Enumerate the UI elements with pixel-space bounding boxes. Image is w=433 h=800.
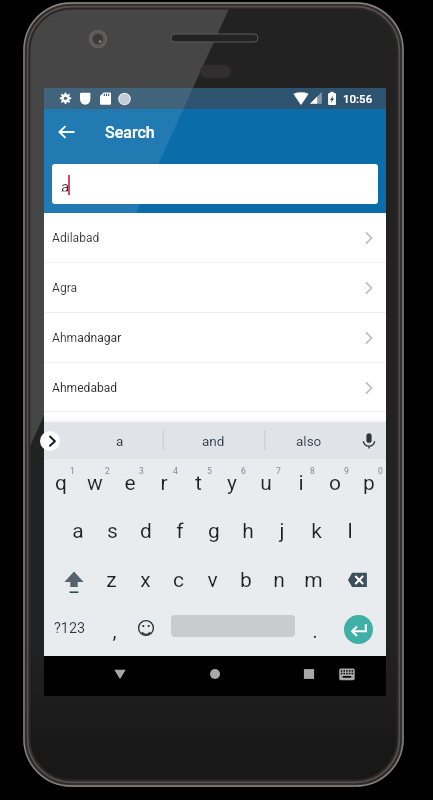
staticText: a	[61, 178, 70, 196]
button[interactable]: w	[78, 466, 112, 500]
staticText: 7	[276, 466, 281, 476]
staticText: 1	[70, 466, 75, 476]
button[interactable]: Backspace	[342, 563, 376, 597]
button[interactable]: also	[269, 422, 349, 459]
button[interactable]: a	[61, 514, 95, 548]
staticText: v	[207, 568, 218, 593]
button[interactable]: ?123	[53, 611, 87, 645]
button[interactable]: Agra	[44, 263, 386, 313]
button[interactable]: a	[80, 422, 160, 459]
button[interactable]: u	[249, 466, 283, 500]
staticText: also	[296, 433, 322, 449]
button[interactable]: t	[181, 466, 215, 500]
button[interactable]: b	[229, 563, 263, 597]
button[interactable]: r	[147, 466, 181, 500]
button[interactable]: d	[129, 514, 163, 548]
button[interactable]: j	[265, 514, 299, 548]
button[interactable]: k	[299, 514, 333, 548]
staticText: c	[173, 568, 184, 593]
staticText: 6	[241, 466, 246, 476]
staticText: 9	[344, 466, 349, 476]
button[interactable]: l	[333, 514, 367, 548]
staticText: b	[240, 568, 252, 593]
staticText: .	[312, 619, 318, 644]
button[interactable]: Ahmedabad	[44, 363, 386, 412]
staticText: g	[208, 519, 220, 544]
button[interactable]: m	[296, 563, 330, 597]
staticText: i	[298, 471, 304, 496]
staticText: k	[311, 519, 322, 544]
button[interactable]: Back	[47, 112, 87, 152]
button[interactable]: More suggestions	[40, 431, 60, 451]
staticText: a	[116, 433, 124, 449]
staticText: p	[363, 471, 375, 496]
button[interactable]: Switch keyboard	[330, 657, 364, 691]
button[interactable]: i	[284, 466, 318, 500]
button[interactable]: n	[262, 563, 296, 597]
staticText: a	[72, 519, 84, 544]
staticText: 3	[139, 466, 144, 476]
button[interactable]: y	[215, 466, 249, 500]
staticText: z	[106, 568, 117, 593]
staticText: q	[55, 471, 67, 496]
staticText: w	[87, 471, 103, 496]
button[interactable]: f	[163, 514, 197, 548]
staticText: j	[279, 519, 285, 544]
button[interactable]: .	[298, 614, 332, 648]
button[interactable]: Back	[103, 657, 137, 691]
button[interactable]: h	[231, 514, 265, 548]
staticText: 8	[310, 466, 315, 476]
staticText: r	[160, 471, 168, 496]
button[interactable]: Enter	[344, 615, 373, 644]
button[interactable]: v	[195, 563, 229, 597]
button[interactable]: Ahmadnagar	[44, 313, 386, 363]
button[interactable]: Voice input	[357, 429, 381, 453]
staticText: 5	[207, 466, 212, 476]
staticText: t	[195, 471, 202, 496]
button[interactable]: s	[95, 514, 129, 548]
staticText: l	[347, 519, 353, 544]
staticText: d	[140, 519, 152, 544]
button[interactable]: g	[197, 514, 231, 548]
staticText: Ahmadnagar	[52, 331, 122, 345]
button[interactable]: c	[161, 563, 195, 597]
button[interactable]: Recent apps	[292, 657, 326, 691]
staticText: f	[176, 519, 184, 544]
button[interactable]: ,	[97, 614, 131, 648]
staticText: Agra	[52, 281, 78, 295]
staticText: n	[273, 568, 285, 593]
button[interactable]: a	[52, 164, 378, 204]
button[interactable]: Emoji	[129, 611, 163, 645]
button[interactable]: Shift	[57, 563, 91, 597]
staticText: m	[304, 568, 323, 593]
staticText: e	[124, 471, 136, 496]
staticText: h	[242, 519, 254, 544]
staticText: ?123	[54, 620, 86, 637]
staticText: o	[329, 471, 341, 496]
button[interactable]: e	[113, 466, 147, 500]
button[interactable]: and	[173, 422, 253, 459]
button[interactable]: Home	[198, 657, 232, 691]
staticText: x	[140, 568, 151, 593]
staticText: ,	[112, 619, 117, 644]
staticText: 2	[105, 466, 110, 476]
staticText: 0	[378, 466, 383, 476]
button[interactable]: Adilabad	[44, 213, 386, 263]
button[interactable]: o	[318, 466, 352, 500]
staticText: and	[202, 433, 225, 449]
staticText: 10:56	[343, 92, 373, 105]
staticText: u	[260, 471, 272, 496]
staticText: Ahmedabad	[52, 381, 118, 395]
button[interactable]: z	[94, 563, 128, 597]
button[interactable]: q	[44, 466, 78, 500]
staticText: Search	[105, 123, 155, 142]
button[interactable]: x	[128, 563, 162, 597]
staticText: Adilabad	[52, 231, 100, 245]
staticText: 4	[173, 466, 178, 476]
staticText: s	[107, 519, 118, 544]
staticText: y	[227, 471, 237, 496]
button[interactable]: p	[352, 466, 386, 500]
